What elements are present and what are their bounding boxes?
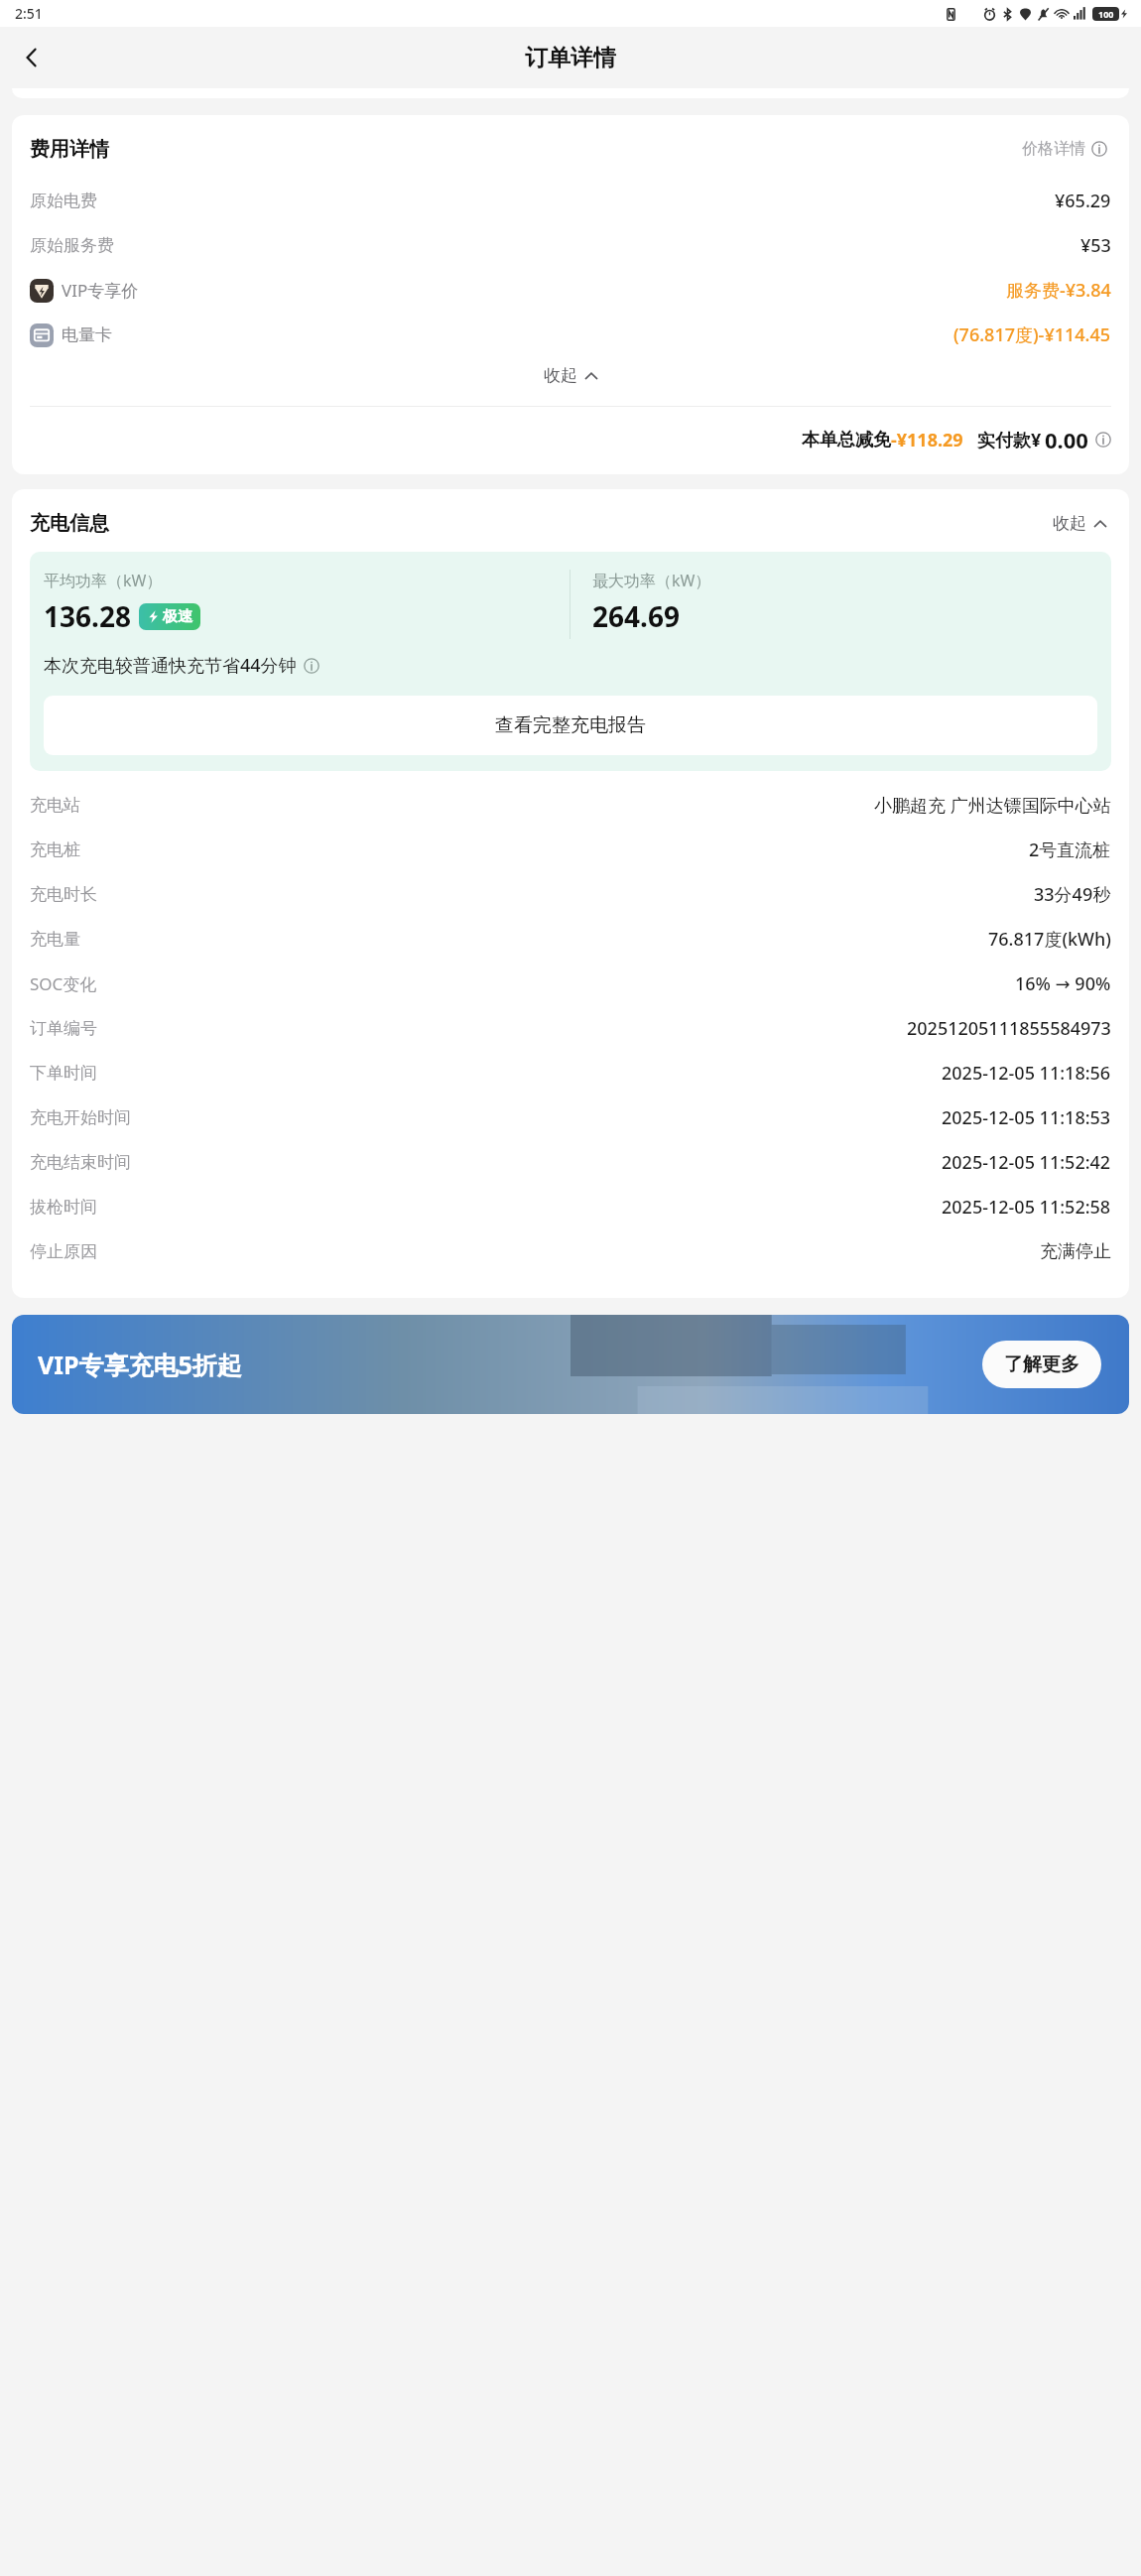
staticText: 2025-12-05 11:52:42	[942, 1150, 1111, 1175]
staticText: 100	[1098, 8, 1114, 20]
staticText: 收起	[544, 365, 577, 386]
staticText: 20251205111855584973	[907, 1016, 1111, 1041]
staticText: 充电桩	[30, 839, 80, 860]
staticText: 收起	[1053, 513, 1086, 534]
staticText: 平均功率（kW）	[44, 570, 163, 591]
staticText: 停止原因	[30, 1241, 97, 1262]
button[interactable]: 价格详情	[1018, 135, 1111, 163]
button[interactable]: VIP专享充电5折起	[12, 1315, 1129, 1414]
staticText: 实付款¥	[977, 428, 1042, 452]
staticText: 价格详情	[1022, 139, 1085, 159]
staticText: 2025-12-05 11:52:58	[942, 1195, 1111, 1220]
staticText: 订单编号	[30, 1018, 97, 1039]
button[interactable]: 返回	[8, 34, 56, 81]
staticText: 2025-12-05 11:18:56	[942, 1061, 1111, 1086]
staticText: 2:51	[15, 4, 43, 23]
staticText: 充电信息	[30, 511, 109, 536]
staticText: 充电站	[30, 795, 80, 816]
staticText: VIP专享价	[62, 279, 139, 302]
staticText: -¥118.29	[891, 428, 963, 452]
staticText: 服务费-¥3.84	[1006, 278, 1111, 303]
staticText: VIP专享充电5折起	[38, 1348, 242, 1381]
staticText: ¥53	[1080, 233, 1111, 258]
staticText: ¥65.29	[1055, 189, 1111, 213]
staticText: 原始服务费	[30, 235, 114, 256]
staticText: 2号直流桩	[1029, 837, 1111, 862]
staticText: 76.817度(kWh)	[988, 927, 1111, 952]
staticText: 下单时间	[30, 1063, 97, 1084]
staticText: 费用详情	[30, 137, 109, 162]
staticText: 16% → 90%	[1015, 971, 1111, 996]
staticText: 充电时长	[30, 884, 97, 905]
staticText: SOC变化	[30, 972, 97, 995]
staticText: 33分49秒	[1034, 882, 1111, 907]
staticText: (76.817度)-¥114.45	[953, 322, 1111, 347]
staticText: 电量卡	[62, 324, 112, 345]
staticText: 本次充电较普通快充节省44分钟	[44, 653, 297, 678]
staticText: 原始电费	[30, 191, 97, 211]
staticText: 本单总减免	[802, 429, 891, 451]
staticText: 最大功率（kW）	[592, 570, 711, 591]
staticText: 2025-12-05 11:18:53	[942, 1105, 1111, 1130]
staticText: 136.28	[44, 597, 131, 635]
staticText: 充电开始时间	[30, 1107, 131, 1128]
staticText: 拔枪时间	[30, 1197, 97, 1218]
staticText: 极速	[163, 607, 192, 626]
staticText: 264.69	[592, 597, 680, 635]
staticText: 充电结束时间	[30, 1152, 131, 1173]
button[interactable]: 收起	[30, 359, 1111, 392]
staticText: 订单详情	[525, 44, 616, 72]
staticText: 充电量	[30, 929, 80, 950]
staticText: 了解更多	[1004, 1352, 1079, 1376]
staticText: 小鹏超充 广州达镖国际中心站	[874, 793, 1111, 818]
button[interactable]: 了解更多	[982, 1341, 1101, 1388]
button[interactable]: 查看完整充电报告	[44, 696, 1097, 755]
staticText: 0.00	[1045, 425, 1088, 454]
button[interactable]: 收起	[1049, 509, 1111, 538]
staticText: 查看完整充电报告	[495, 713, 646, 737]
staticText: 充满停止	[1040, 1240, 1111, 1263]
